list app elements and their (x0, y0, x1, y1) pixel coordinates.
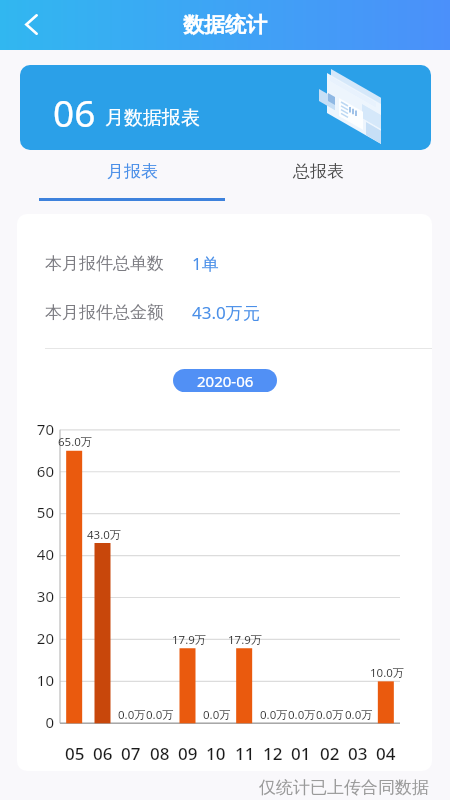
staticText: 43.0万元 (192, 301, 260, 324)
staticText: 0.0万 (118, 707, 146, 723)
staticText: 0 (45, 712, 54, 732)
staticText: 08 (150, 742, 170, 765)
staticText: 12 (263, 742, 283, 765)
staticText: 04 (376, 742, 396, 765)
staticText: 0.0万 (345, 707, 373, 723)
staticText: 11 (235, 742, 255, 765)
staticText: 02 (320, 742, 340, 765)
staticText: 07 (121, 742, 141, 765)
staticText: 本月报件总单数 (45, 253, 164, 274)
button[interactable]: 06 (20, 65, 431, 150)
staticText: 60 (36, 461, 54, 481)
staticText: 10 (206, 742, 226, 765)
staticText: 月数据报表 (105, 106, 200, 130)
staticText: 30 (36, 586, 54, 606)
staticText: 17.9万 (172, 632, 207, 648)
staticText: 0.0万 (260, 707, 288, 723)
staticText: 70 (36, 419, 54, 439)
button[interactable]: 2020-06 (173, 369, 277, 392)
staticText: 50 (36, 502, 54, 522)
staticText: 06 (93, 742, 113, 765)
staticText: 05 (65, 742, 85, 765)
staticText: 0.0万 (288, 707, 316, 723)
staticText: 本月报件总金额 (45, 302, 164, 323)
staticText: 仅统计已上传合同数据 (259, 777, 429, 798)
staticText: 0.0万 (146, 707, 174, 723)
staticText: 月报表 (107, 161, 158, 182)
staticText: 10.0万 (370, 665, 405, 681)
staticText: 06 (53, 87, 96, 137)
button[interactable]: Back (8, 2, 54, 48)
staticText: 1单 (192, 252, 219, 275)
staticText: 20 (36, 628, 54, 648)
staticText: 总报表 (293, 161, 344, 182)
staticText: 2020-06 (197, 371, 254, 391)
staticText: 10 (36, 670, 54, 690)
staticText: 40 (36, 544, 54, 564)
staticText: 17.9万 (228, 632, 263, 648)
staticText: 09 (178, 742, 198, 765)
button[interactable]: 月报表 (39, 153, 225, 203)
staticText: 0.0万 (203, 707, 231, 723)
staticText: 03 (348, 742, 368, 765)
staticText: 数据统计 (183, 12, 267, 38)
staticText: 65.0万 (58, 434, 93, 450)
button[interactable]: 总报表 (225, 153, 411, 203)
staticText: 0.0万 (316, 707, 344, 723)
staticText: 43.0万 (87, 527, 122, 543)
staticText: 01 (291, 742, 311, 765)
